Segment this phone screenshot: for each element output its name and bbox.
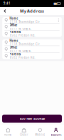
staticText: Order [20,133,28,137]
button[interactable]: Order [16,125,32,140]
staticText: My Address [20,8,44,14]
staticText: 2118 Thornridge Cir [10,42,40,46]
staticText: 8502 Preston Rd. [10,34,36,37]
staticText: Office [10,46,18,49]
staticText: Parents [10,30,21,34]
staticText: Wishlist [35,133,45,137]
staticText: Home [10,17,19,20]
staticText: Home [10,39,19,42]
staticText: 3517 W. Gray St. [10,49,32,53]
button[interactable]: Account [48,125,64,140]
button[interactable]: Office [2,46,62,52]
button[interactable]: Parents [2,31,62,37]
button[interactable]: Home [2,39,62,46]
staticText: Home [4,133,12,137]
staticText: 3517 W. Gray St. [10,27,32,30]
button[interactable]: Wishlist [32,125,48,140]
button[interactable]: ADD NEW ADDRESS [2,115,62,123]
button[interactable]: Office [2,24,62,30]
staticText: Office [10,23,18,27]
staticText: ADD NEW ADDRESS [19,117,44,120]
staticText: 9:41 [3,2,10,5]
staticText: Account [50,133,61,137]
staticText: 2118 Thornridge Cir [10,20,40,24]
staticText: Parents [10,52,21,56]
button[interactable]: Back [1,7,8,14]
staticText: ▮▮▮ [53,2,56,5]
staticText: 8502 Preston Rd. [10,56,36,59]
button[interactable]: Home [2,17,62,23]
button[interactable]: Parents [2,53,62,59]
button[interactable]: Home [0,125,16,140]
